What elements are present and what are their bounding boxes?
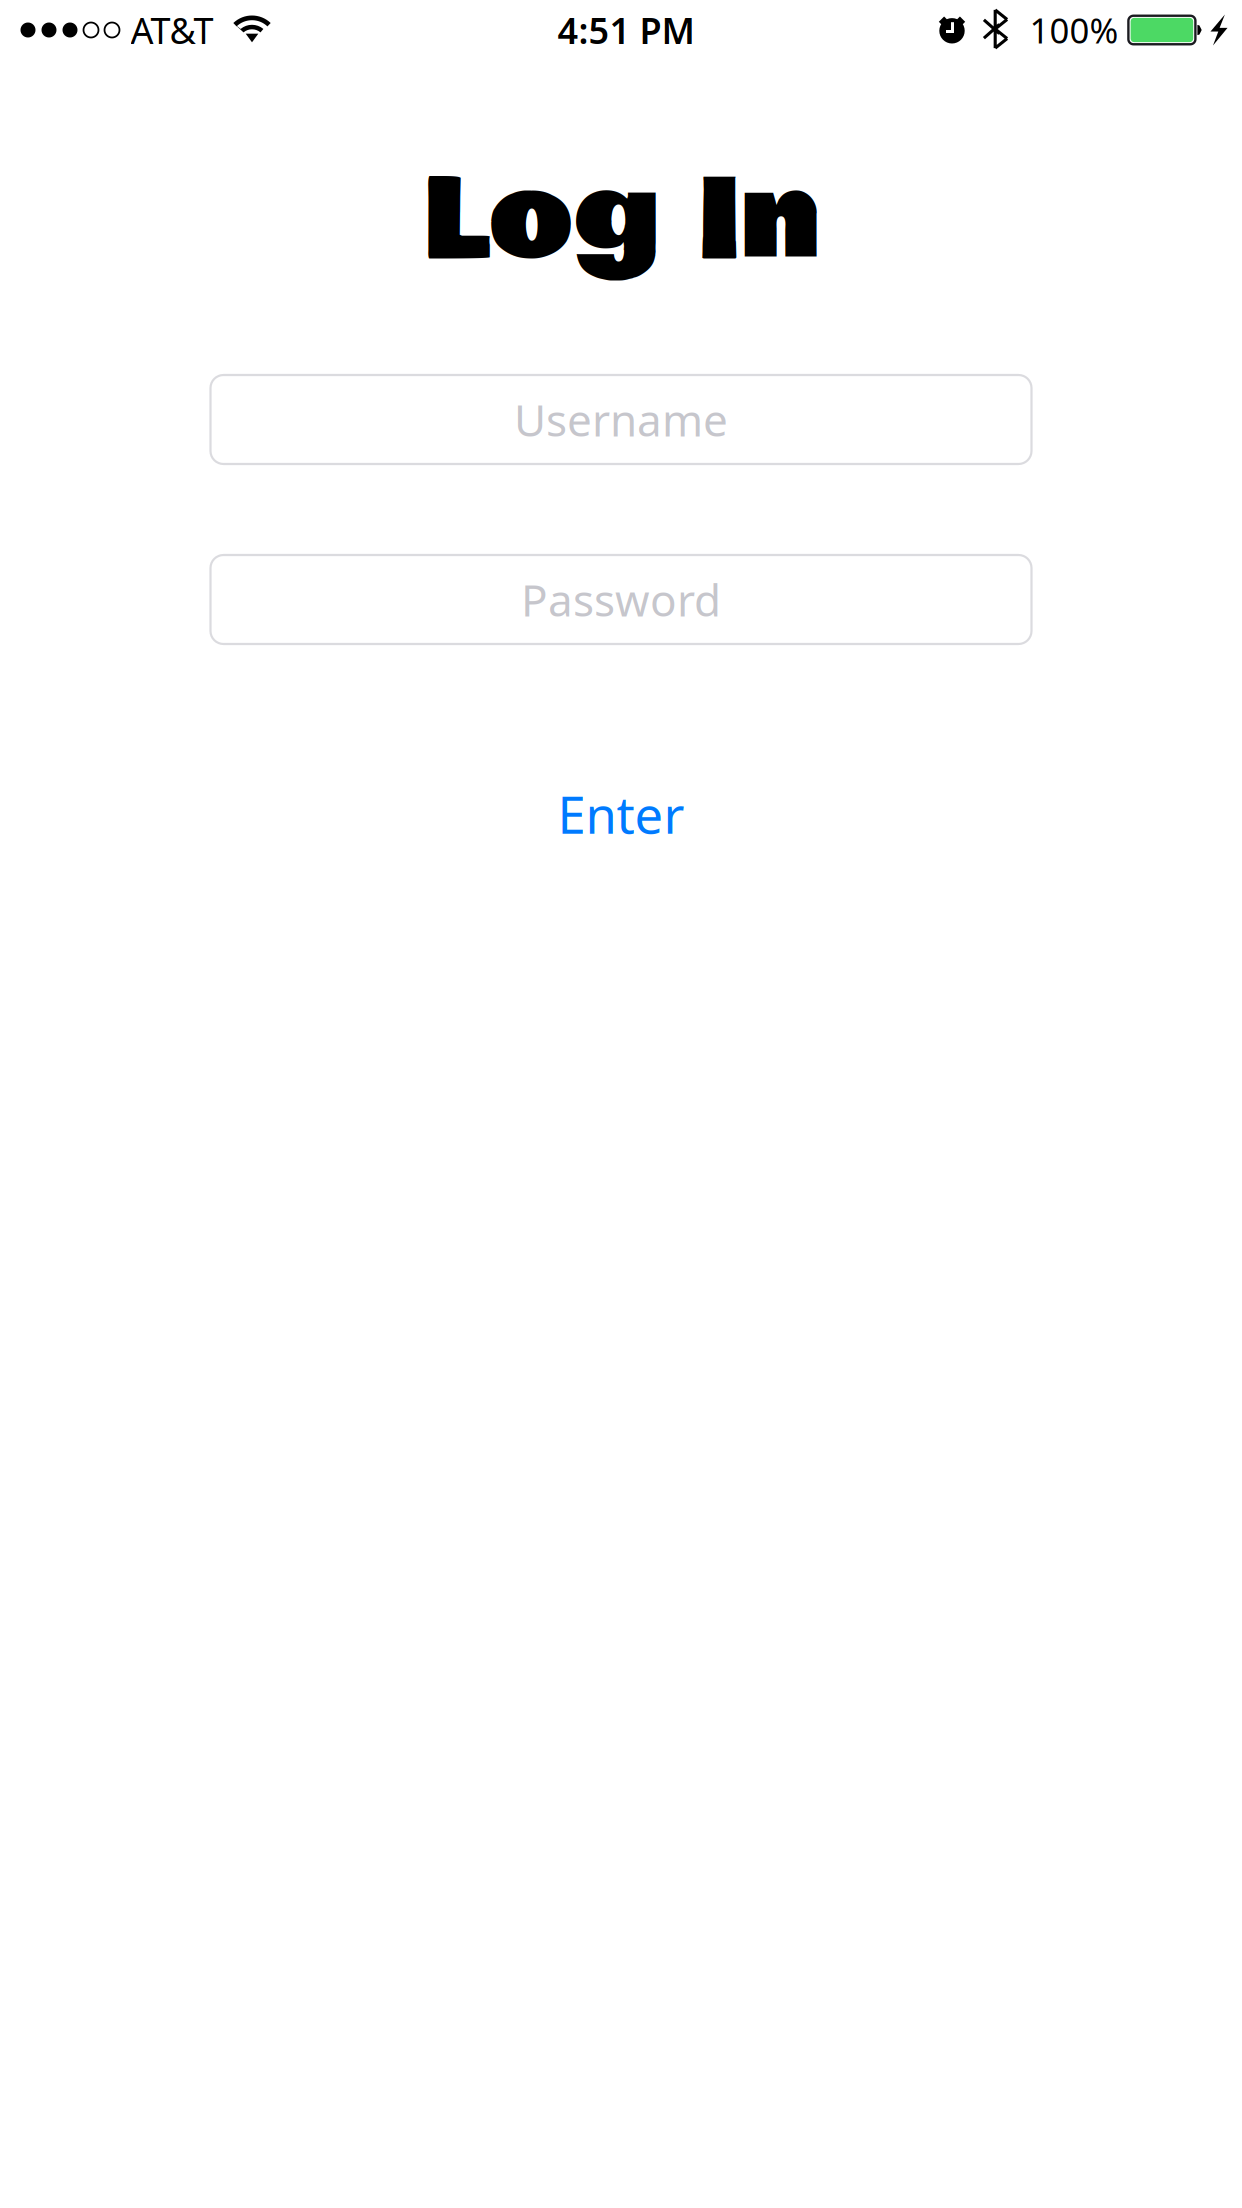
button[interactable]: Enter	[541, 780, 701, 848]
staticText: Username	[514, 390, 728, 449]
staticText: AT&T	[130, 6, 213, 54]
staticText: 100%	[1029, 7, 1118, 53]
staticText: Password	[521, 570, 721, 629]
staticText: Log In	[422, 135, 820, 306]
staticText: 4:51 PM	[557, 6, 694, 54]
button[interactable]: Password	[210, 555, 1031, 644]
button[interactable]: Username	[210, 375, 1031, 464]
staticText: Enter	[557, 780, 684, 848]
